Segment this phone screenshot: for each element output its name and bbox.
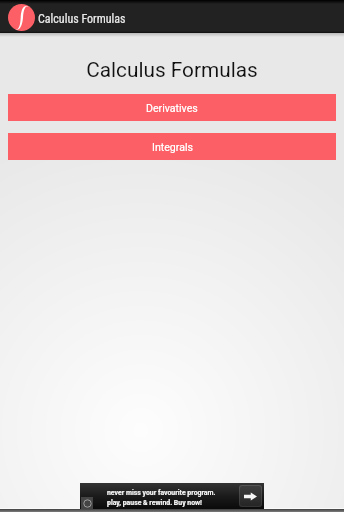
button[interactable]: Ad info xyxy=(81,497,93,509)
staticText: Derivatives xyxy=(146,102,198,114)
button[interactable]: Open advertisement xyxy=(240,486,261,506)
button[interactable]: never miss your favourite program. xyxy=(80,483,264,509)
staticText: Calculus Formulas xyxy=(38,12,126,26)
button[interactable]: Derivatives xyxy=(8,94,336,121)
button[interactable]: Integrals xyxy=(8,133,336,160)
staticText: never miss your favourite program. xyxy=(107,489,216,497)
staticText: play, pause & rewind. Buy now! xyxy=(107,499,202,507)
staticText: Integrals xyxy=(152,141,193,153)
staticText: Calculus Formulas xyxy=(0,58,344,82)
other: Calculus Formulas icon xyxy=(8,4,35,31)
